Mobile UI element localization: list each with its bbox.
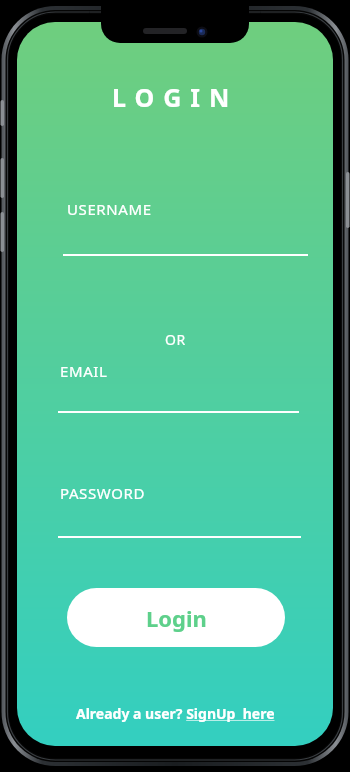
staticText: EMAIL — [60, 361, 108, 381]
staticText: Already a user? SignUp here — [76, 704, 275, 723]
staticText: LOGIN — [112, 80, 239, 114]
button[interactable]: Login — [67, 588, 285, 647]
staticText: OR — [165, 330, 186, 349]
staticText: PASSWORD — [60, 483, 145, 503]
staticText: Login — [146, 603, 207, 633]
button[interactable]: Already a user? SignUp here — [76, 704, 275, 723]
staticText: USERNAME — [67, 199, 152, 219]
